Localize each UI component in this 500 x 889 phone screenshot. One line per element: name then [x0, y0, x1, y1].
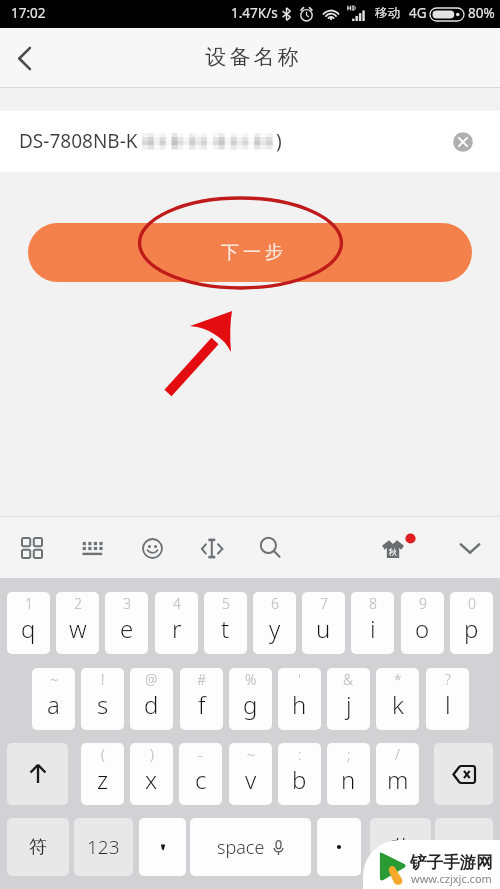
staticText: ) [150, 745, 154, 764]
button[interactable]: ? [426, 668, 469, 730]
staticText: p [464, 612, 479, 645]
staticText: / [395, 745, 400, 764]
button[interactable]: ) [130, 743, 173, 805]
button[interactable]: Search [249, 526, 291, 568]
button[interactable]: 7 [302, 592, 345, 654]
button[interactable]: Comma [139, 818, 186, 876]
staticText: s [97, 688, 109, 721]
staticText: 5 [222, 594, 230, 613]
staticText: f [198, 688, 206, 721]
staticText: 秋 [389, 547, 397, 557]
staticText: a [47, 688, 60, 721]
staticText: www.czjxjc.com [411, 871, 492, 886]
staticText: 符 [29, 836, 47, 859]
button[interactable]: ! [81, 668, 124, 730]
button[interactable]: 3 [105, 592, 148, 654]
staticText: h [292, 688, 307, 721]
button[interactable]: Hide keyboard [449, 527, 491, 569]
button[interactable]: 5 [204, 592, 247, 654]
staticText: k [392, 688, 404, 721]
staticText: * [394, 670, 402, 689]
button[interactable]: 9 [401, 592, 444, 654]
staticText: : [298, 745, 302, 764]
button[interactable]: ~ [32, 668, 75, 730]
staticText: t [221, 612, 230, 645]
staticText: 1 [25, 594, 33, 613]
button[interactable]: ~ [229, 743, 272, 805]
button[interactable] [435, 818, 493, 876]
staticText: b [292, 763, 307, 796]
button[interactable]: ; [327, 743, 370, 805]
staticText: ( [101, 745, 105, 764]
staticText: 9 [419, 594, 427, 613]
staticText: v [245, 763, 257, 796]
staticText: - [198, 745, 203, 764]
button[interactable]: Back [0, 33, 50, 83]
staticText: m [387, 763, 409, 796]
button[interactable]: % [229, 668, 272, 730]
button[interactable]: Emoji [131, 527, 173, 569]
button[interactable]: Keyboard layout [71, 527, 113, 569]
staticText: u [316, 612, 331, 645]
staticText: 17:02 [11, 4, 46, 22]
staticText: & [343, 670, 354, 689]
button[interactable]: & [327, 668, 370, 730]
staticText: ! [101, 670, 105, 689]
staticText: space [217, 835, 265, 860]
staticText: x [145, 763, 158, 796]
staticText: w [69, 612, 87, 645]
staticText: q [21, 612, 36, 645]
button[interactable]: 英 [370, 818, 431, 876]
staticText: # [197, 670, 207, 689]
button[interactable]: - [179, 743, 222, 805]
button[interactable]: Period [317, 818, 361, 876]
button[interactable]: 4 [155, 592, 198, 654]
button[interactable]: Backspace [434, 743, 493, 805]
button[interactable]: 1 [7, 592, 50, 654]
staticText: 2 [74, 594, 82, 613]
button[interactable]: # [180, 668, 223, 730]
staticText: DS-7808NB-K [19, 128, 138, 154]
staticText: j [346, 688, 352, 721]
staticText: ~ [50, 670, 58, 689]
button[interactable]: ( [81, 743, 124, 805]
staticText: r [172, 612, 182, 645]
staticText: i [370, 612, 376, 645]
staticText: ' [298, 670, 301, 689]
staticText: ) [276, 128, 282, 154]
button[interactable]: Shift [7, 743, 68, 805]
button[interactable]: 下一步 [28, 223, 472, 282]
staticText: n [341, 763, 356, 796]
staticText: o [415, 612, 430, 645]
staticText: 3 [123, 594, 131, 613]
button[interactable]: @ [130, 668, 173, 730]
button[interactable]: * [376, 668, 419, 730]
button[interactable]: 0 [450, 592, 493, 654]
staticText: 80% [468, 4, 495, 22]
button[interactable]: : [278, 743, 321, 805]
button[interactable]: Themes [371, 533, 415, 577]
staticText: @ [145, 670, 158, 689]
staticText: 0 [468, 594, 476, 613]
staticText: d [144, 688, 159, 721]
button[interactable]: space [190, 818, 311, 876]
staticText: 英 [392, 836, 410, 859]
button[interactable]: 8 [351, 592, 394, 654]
staticText: 下一步 [219, 241, 285, 264]
button[interactable]: Move cursor [191, 527, 233, 569]
button[interactable]: 123 [74, 818, 133, 876]
button[interactable]: / [376, 743, 419, 805]
staticText: 4G [409, 4, 427, 22]
staticText: c [195, 763, 207, 796]
staticText: ~ [247, 745, 255, 764]
button[interactable]: Clear text [443, 122, 483, 162]
staticText: 移动 [375, 5, 400, 21]
staticText: 8 [369, 594, 377, 613]
button[interactable]: Panels [11, 527, 53, 569]
button[interactable]: 2 [56, 592, 99, 654]
button[interactable]: ' [278, 668, 321, 730]
button[interactable]: 6 [253, 592, 296, 654]
staticText: ; [347, 745, 351, 764]
staticText: % [245, 670, 257, 689]
button[interactable]: 符 [7, 818, 69, 876]
